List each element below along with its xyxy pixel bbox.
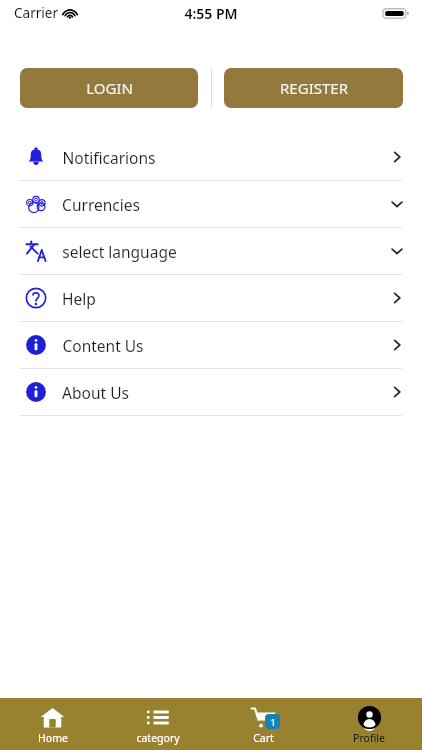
other: category: [145, 705, 170, 730]
button[interactable]: Currencies: [0, 181, 422, 227]
staticText: select language: [62, 241, 177, 262]
button[interactable]: Profile: [316, 698, 422, 750]
staticText: Home: [38, 731, 68, 745]
staticText: REGISTER: [280, 78, 348, 98]
button[interactable]: Home: [0, 698, 105, 750]
button[interactable]: Help: [0, 275, 422, 321]
button[interactable]: Content Us: [0, 322, 422, 368]
staticText: category: [136, 731, 180, 745]
staticText: Notificarions: [62, 147, 156, 168]
staticText: 4:55 PM: [184, 4, 238, 23]
button[interactable]: REGISTER: [224, 68, 403, 108]
staticText: Help: [62, 288, 96, 309]
staticText: LOGIN: [86, 78, 133, 98]
staticText: 1: [270, 716, 276, 728]
staticText: Profile: [353, 731, 385, 745]
staticText: Cart: [253, 731, 274, 745]
staticText: Content Us: [62, 335, 144, 356]
button[interactable]: LOGIN: [20, 68, 198, 108]
other: Cart: [251, 705, 276, 730]
button[interactable]: Cart: [210, 698, 316, 750]
other: Home: [40, 705, 65, 730]
button[interactable]: select language: [0, 228, 422, 274]
staticText: Carrier: [14, 4, 58, 22]
button[interactable]: Notificarions: [0, 134, 422, 180]
staticText: Currencies: [62, 194, 140, 215]
other: Profile: [357, 705, 382, 730]
button[interactable]: About Us: [0, 369, 422, 415]
staticText: About Us: [62, 382, 129, 403]
button[interactable]: category: [105, 698, 210, 750]
